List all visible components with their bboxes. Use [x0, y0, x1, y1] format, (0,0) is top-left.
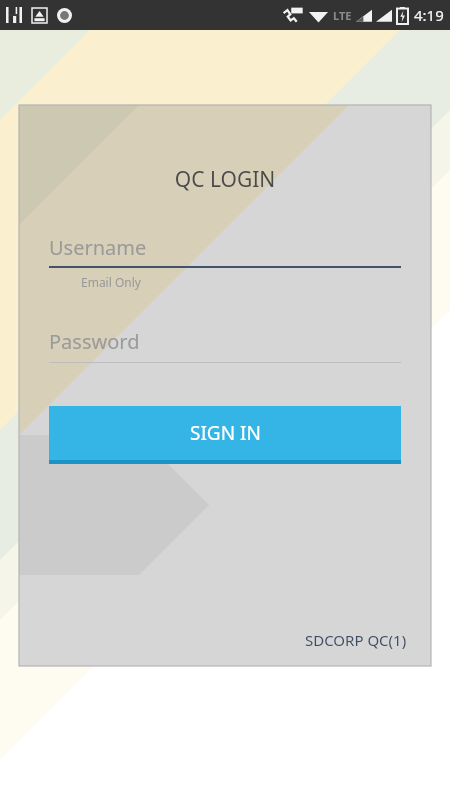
button[interactable]: SDCORP QC(1): [305, 630, 407, 650]
button[interactable]: Password: [49, 328, 401, 363]
button[interactable]: Username: [49, 234, 401, 290]
staticText: 4:19: [414, 5, 444, 25]
staticText: Password: [49, 328, 140, 355]
staticText: SIGN IN: [190, 420, 261, 446]
staticText: Username: [49, 234, 147, 261]
staticText: LTE: [333, 8, 352, 23]
staticText: Email Only: [81, 274, 141, 290]
button[interactable]: SIGN IN: [49, 406, 401, 460]
staticText: QC LOGIN: [19, 165, 431, 194]
